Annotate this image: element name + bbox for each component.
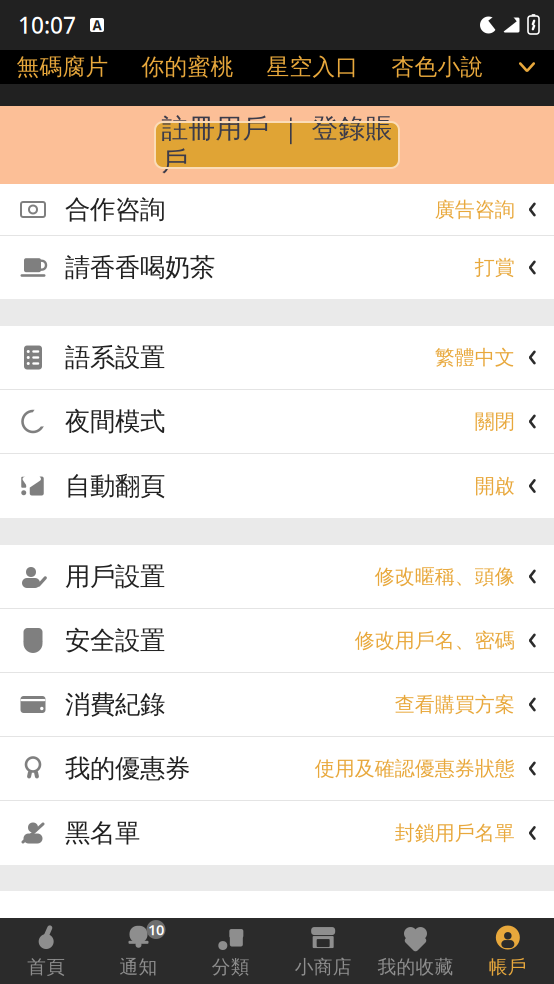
button[interactable]: 黑名單 [0, 801, 554, 865]
staticText: 用戶設置 [65, 561, 165, 592]
staticText: A [92, 16, 101, 34]
staticText: 星空入口 [266, 53, 358, 81]
staticText: 繁體中文 [435, 345, 515, 370]
button[interactable]: 分類 [185, 918, 277, 984]
staticText: 無碼腐片 [16, 53, 108, 81]
staticText: 帳戶 [489, 955, 527, 978]
staticText: 查看購買方案 [395, 692, 515, 717]
button[interactable]: More categories [500, 50, 554, 84]
staticText: 首頁 [27, 955, 65, 978]
button[interactable]: 用戶設置 [0, 545, 554, 609]
staticText: 10 [148, 920, 164, 939]
button[interactable]: 註冊用戶 ｜ 登錄賬戶 [155, 122, 399, 168]
button[interactable]: 請香香喝奶茶 [0, 236, 554, 299]
staticText: 黑名單 [65, 817, 140, 848]
staticText: 安全設置 [65, 625, 165, 656]
button[interactable]: 語系設置 [0, 326, 554, 390]
staticText: 註冊用戶 ｜ 登錄賬戶 [161, 112, 392, 178]
staticText: 語系設置 [65, 342, 165, 373]
button[interactable]: 杏色小說 [375, 50, 500, 84]
staticText: 10:07 [18, 10, 76, 40]
button[interactable]: 10 [92, 918, 185, 984]
button[interactable]: 星空入口 [250, 50, 375, 84]
staticText: 你的蜜桃 [141, 53, 233, 81]
button[interactable]: 我的收藏 [369, 918, 462, 984]
button[interactable]: 帳戶 [462, 918, 554, 984]
staticText: 自動翻頁 [65, 470, 165, 501]
staticText: 合作咨詢 [65, 194, 165, 225]
button[interactable]: 安全設置 [0, 609, 554, 673]
button[interactable]: 首頁 [0, 918, 92, 984]
staticText: 使用及確認優惠券狀態 [315, 756, 515, 781]
staticText: 廣告咨詢 [435, 197, 515, 222]
staticText: 我的收藏 [377, 955, 453, 978]
staticText: 夜間模式 [65, 406, 165, 437]
button[interactable]: 夜間模式 [0, 390, 554, 454]
staticText: 我的優惠券 [65, 753, 190, 784]
staticText: 消費紀錄 [65, 689, 165, 720]
staticText: 請香香喝奶茶 [65, 252, 215, 283]
button[interactable]: 消費紀錄 [0, 673, 554, 737]
staticText: 通知 [119, 955, 157, 978]
staticText: 分類 [212, 955, 250, 978]
staticText: 修改用戶名、密碼 [355, 628, 515, 653]
staticText: 修改暱稱、頭像 [375, 564, 515, 589]
staticText: 小商店 [295, 955, 352, 978]
staticText: 打賞 [475, 255, 515, 280]
staticText: 杏色小說 [391, 53, 483, 81]
button[interactable]: 我的優惠券 [0, 737, 554, 801]
staticText: 關閉 [475, 409, 515, 434]
staticText: 開啟 [475, 474, 515, 498]
button[interactable]: 你的蜜桃 [125, 50, 250, 84]
button[interactable]: 無碼腐片 [0, 50, 125, 84]
button[interactable]: 合作咨詢 [0, 184, 554, 236]
button[interactable]: 自動翻頁 [0, 454, 554, 518]
staticText: 封鎖用戶名單 [395, 821, 515, 845]
button[interactable]: 小商店 [277, 918, 369, 984]
